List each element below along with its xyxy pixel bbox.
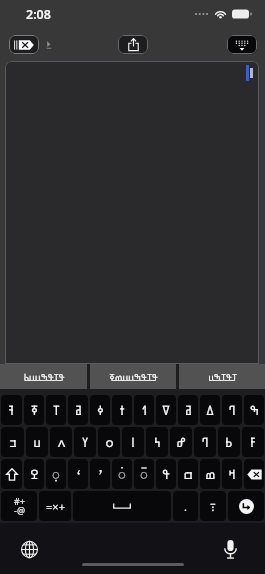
staticText: ߠ [53,401,60,419]
button[interactable]: ߥ [68,395,88,425]
button[interactable]: Clear formatting [9,35,39,54]
staticText: ߐ [30,465,39,483]
staticText: ߵ [76,465,81,483]
button[interactable]: ߘ [200,459,220,489]
button[interactable]: ߹ [200,491,226,521]
staticText: ߲ [52,465,60,483]
button[interactable]: ߍ [50,427,72,457]
button[interactable]: Voice input [215,534,245,564]
button[interactable]: ߋ [98,427,120,457]
button[interactable]: ߊ [122,427,144,457]
button[interactable]: ߏ [1,427,24,457]
button[interactable]: ߞ [222,459,242,489]
button[interactable]: ߗ [134,395,154,425]
button[interactable]: ߜ [156,395,176,425]
staticText: . [184,499,187,514]
button[interactable]: ߛ [178,459,198,489]
staticText: ߞ [228,465,236,483]
staticText: #+ -@ [14,495,25,517]
button[interactable]: ߠ [46,395,66,425]
button[interactable]: ߎ [26,427,48,457]
staticText: ߡ [206,401,214,419]
staticText: 2:08 [26,6,51,23]
staticText: ߒ [250,401,259,419]
button[interactable]: ߧ [24,395,44,425]
staticText: ߟߠߟߒߎߎߕ [23,370,65,384]
button[interactable]: ߕ [218,427,240,457]
button[interactable]: Space [73,491,171,521]
staticText: ߥ [75,401,82,419]
button[interactable]: ߙ [112,395,132,425]
button[interactable]: Symbols [1,491,37,521]
staticText: ߆ [154,433,161,451]
staticText: ߝ [176,433,186,451]
button[interactable]: Enter [228,491,264,521]
staticText: ߟ [162,465,170,483]
button[interactable]: ߔ [1,395,22,425]
button[interactable]: ߟߠߟߒߎߎߕ [0,364,87,389]
staticText: ߏ [9,433,17,451]
staticText: ߕ [225,433,233,451]
staticText: ߓ [250,433,257,451]
button[interactable]: ߓ [242,427,264,457]
staticText: ߌ [82,433,88,451]
button[interactable]: ߣ [222,395,242,425]
staticText: =×+ [46,499,65,514]
button[interactable]: Change language [14,534,44,564]
staticText: ߣ [228,401,236,419]
staticText: ߠߟߠߒߎ [208,370,237,384]
button[interactable]: Share [118,35,148,54]
staticText: ߗ [142,401,147,419]
button[interactable]: ߐ [24,459,44,489]
staticText: ߭ [118,465,126,483]
staticText: ߧ [31,401,38,419]
staticText: ߴ [98,465,103,483]
button[interactable]: ߆ [146,427,168,457]
button[interactable]: ߥ [178,395,198,425]
staticText: ߣ [201,433,209,451]
button[interactable]: ߦ [90,395,110,425]
staticText: ߹ [210,498,216,514]
staticText: ߫ [140,465,148,483]
staticText: ߦ [97,401,104,419]
staticText: ߔ [8,401,15,419]
staticText: ߙ [119,401,125,419]
staticText: ߋ [105,433,114,451]
button[interactable]: . [173,491,198,521]
staticText: ߜ [162,401,170,419]
button[interactable]: Hide keyboard [227,35,257,54]
button[interactable]: ߌ [74,427,96,457]
staticText: ߛ [183,465,193,483]
button[interactable]: ߟߠߟߒߎߎߘߧ [90,364,176,389]
staticText: ߘ [205,465,216,483]
staticText: ߍ [57,433,66,451]
button[interactable]: ߭ [112,459,132,489]
button[interactable]: ߝ [170,427,192,457]
button[interactable]: ߲ [46,459,66,489]
button[interactable]: Shift [1,459,22,489]
button[interactable]: ߒ [244,395,264,425]
button[interactable]: ߟ [156,459,176,489]
button[interactable]: ߡ [200,395,220,425]
button[interactable]: ߴ [90,459,110,489]
staticText: ߥ [185,401,192,419]
button[interactable]: Backspace [244,459,264,489]
button[interactable]: ߵ [68,459,88,489]
staticText: ߊ [131,433,135,451]
button[interactable]: =×+ [39,491,71,521]
staticText: ߎ [33,433,41,451]
button[interactable]: ߠߟߠߒߎ [179,364,265,389]
button[interactable]: ߫ [134,459,154,489]
button[interactable]: ߣ [194,427,216,457]
staticText: ߟߠߟߒߎߎߘߧ [109,370,158,384]
